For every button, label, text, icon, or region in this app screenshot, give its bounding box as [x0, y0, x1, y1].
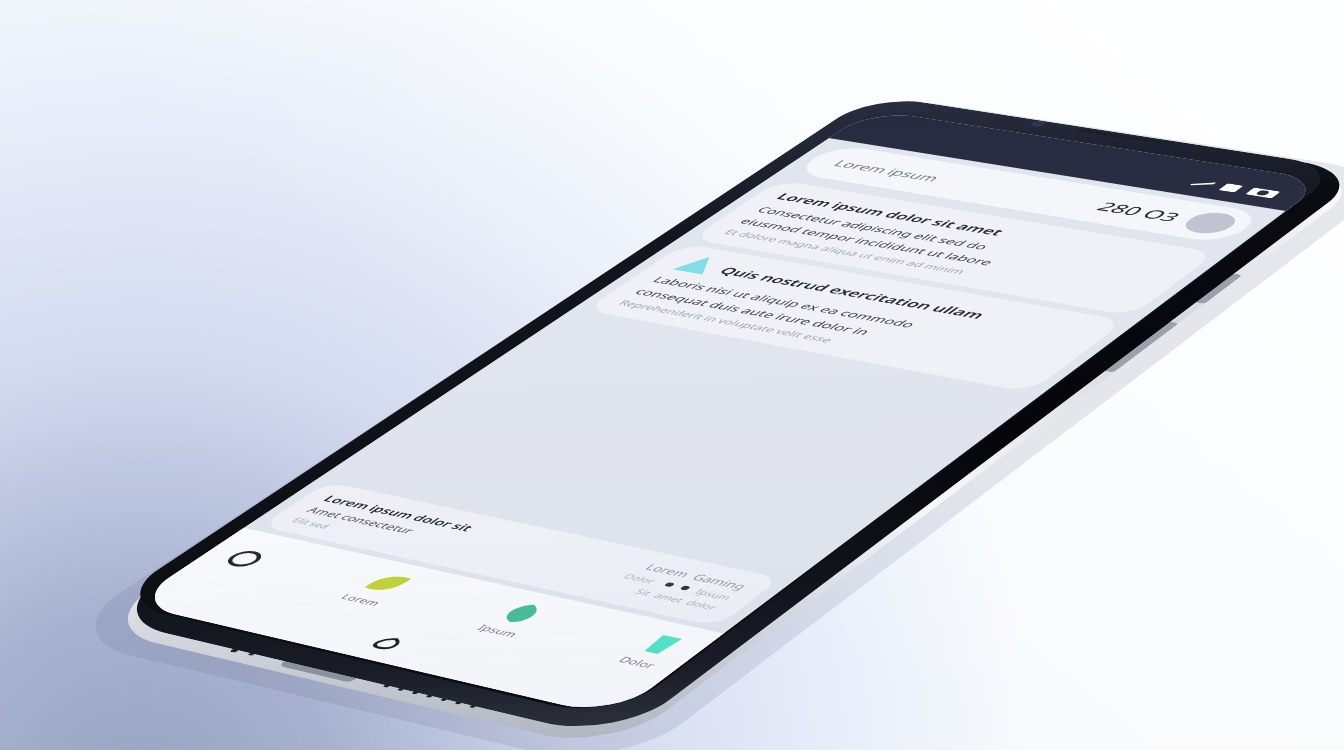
staticText: Lorem Gaming [641, 561, 752, 592]
staticText: Et dolore magna aliqua ut enim ad minim [721, 227, 970, 276]
staticText: Laboris nisi ut aliquip ex ea commodo [648, 274, 920, 330]
button[interactable]: Lorem ipsum dolor sit [260, 482, 782, 627]
button[interactable]: Refresh [203, 541, 286, 577]
button[interactable]: Lorem ipsum [792, 144, 1266, 244]
staticText: Elit sed [289, 515, 335, 530]
staticText: Lorem ipsum [829, 157, 945, 184]
staticText: Amet consectetur [303, 504, 420, 536]
button[interactable]: Dolor [605, 627, 700, 675]
staticText: 280 O3 [1091, 198, 1187, 225]
staticText: Dolor [615, 654, 661, 671]
staticText: Ipsum [474, 622, 522, 639]
staticText: Reprehenderit in voluptate velit esse [615, 298, 837, 345]
staticText: Lorem [337, 591, 386, 608]
staticText: eiusmod tempor incididunt ut labore [736, 216, 998, 268]
staticText: consequat duis aute irure dolor in [631, 286, 875, 338]
staticText: Dolor [621, 571, 660, 585]
staticText: Sit amet dolor [632, 587, 722, 612]
staticText: Consectetur adipiscing elit sed do [753, 204, 993, 252]
staticText: Quis nostrud exercitation ullam [715, 264, 991, 321]
staticText: Lorem ipsum dolor sit [320, 493, 478, 533]
button[interactable]: Ipsum [465, 596, 561, 643]
button[interactable]: Quis nostrud exercitation ullam [584, 243, 1126, 393]
staticText: Lorem ipsum dolor sit amet [772, 190, 1009, 238]
staticText: Ipsum [692, 587, 736, 602]
button[interactable]: Lorem ipsum dolor sit amet [691, 180, 1217, 316]
button[interactable]: Lorem [329, 566, 425, 612]
